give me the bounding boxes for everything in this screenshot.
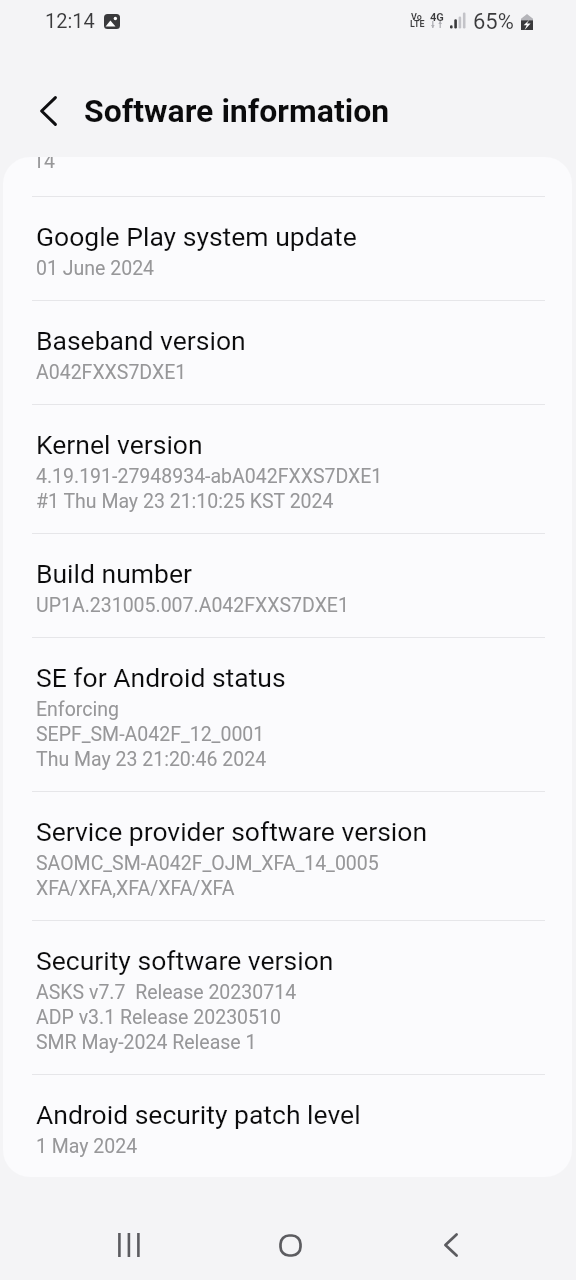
button[interactable]: Recent apps — [91, 1219, 167, 1271]
staticText: Software information — [84, 92, 390, 130]
button[interactable]: Google Play system update — [3, 197, 572, 300]
staticText: Android security patch level — [36, 1099, 361, 1130]
button[interactable]: Baseband version — [3, 301, 572, 404]
staticText: Kernel version — [36, 429, 203, 460]
staticText: Thu May 23 21:20:46 2024 — [36, 748, 267, 771]
staticText: 65% — [473, 9, 514, 35]
staticText: 01 June 2024 — [36, 257, 155, 280]
button[interactable]: Build number — [3, 534, 572, 637]
button[interactable]: Navigate up — [24, 87, 72, 135]
button[interactable]: SE for Android status — [3, 638, 572, 791]
staticText: XFA/XFA,XFA/XFA/XFA — [36, 877, 235, 900]
button[interactable]: Android security patch level — [3, 1075, 572, 1177]
staticText: 14 — [33, 157, 55, 173]
staticText: UP1A.231005.007.A042FXXS7DXE1 — [36, 594, 349, 617]
staticText: Security software version — [36, 945, 334, 976]
staticText: 12:14 — [45, 9, 95, 32]
staticText: 4G — [430, 11, 444, 24]
staticText: ASKS v7.7 Release 20230714 — [36, 981, 297, 1004]
button[interactable]: Back — [413, 1219, 489, 1271]
staticText: 1 May 2024 — [36, 1135, 138, 1158]
staticText: SAOMC_SM-A042F_OJM_XFA_14_0005 — [36, 852, 379, 875]
staticText: SEPF_SM-A042F_12_0001 — [36, 723, 265, 746]
staticText: Service provider software version — [36, 816, 428, 847]
button[interactable]: Service provider software version — [3, 792, 572, 920]
button[interactable]: Home — [252, 1219, 328, 1271]
staticText: SE for Android status — [36, 662, 286, 693]
staticText: LTE — [410, 19, 425, 30]
staticText: SMR May-2024 Release 1 — [36, 1031, 257, 1054]
staticText: ADP v3.1 Release 20230510 — [36, 1006, 281, 1029]
button[interactable]: Security software version — [3, 921, 572, 1074]
staticText: Build number — [36, 558, 192, 589]
staticText: Baseband version — [36, 325, 246, 356]
button[interactable]: Kernel version — [3, 405, 572, 533]
staticText: #1 Thu May 23 21:10:25 KST 2024 — [36, 490, 334, 513]
staticText: Enforcing — [36, 698, 119, 721]
staticText: Google Play system update — [36, 221, 357, 252]
staticText: Vo — [411, 12, 422, 23]
staticText: A042FXXS7DXE1 — [36, 361, 187, 384]
staticText: 4.19.191-27948934-abA042FXXS7DXE1 — [36, 465, 383, 488]
